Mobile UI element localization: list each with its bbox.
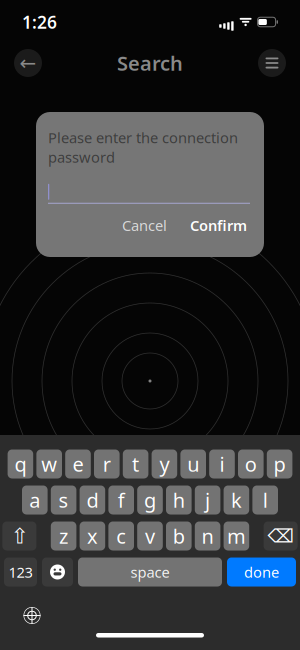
button[interactable]: g <box>137 485 163 514</box>
staticText: 1:26 <box>22 10 57 33</box>
button[interactable]: f <box>108 485 134 514</box>
staticText: s <box>59 487 69 513</box>
button[interactable]: Delete <box>264 521 298 550</box>
staticText: e <box>72 451 83 477</box>
staticText: n <box>202 523 214 549</box>
button[interactable]: b <box>166 521 192 550</box>
staticText: c <box>116 523 126 549</box>
staticText: k <box>231 487 242 513</box>
staticText: t <box>132 451 139 477</box>
button[interactable]: k <box>224 485 249 514</box>
staticText: g <box>144 487 156 513</box>
button[interactable]: x <box>80 521 105 550</box>
staticText: Cancel <box>122 216 167 235</box>
button[interactable]: u <box>180 449 206 478</box>
button[interactable]: q <box>8 449 33 478</box>
staticText: ⌫ <box>268 525 294 547</box>
staticText: d <box>86 487 98 513</box>
button[interactable]: a <box>22 485 48 514</box>
staticText: Confirm <box>190 216 247 235</box>
button[interactable]: Menu <box>258 49 286 77</box>
staticText: space <box>130 562 169 582</box>
staticText: w <box>41 451 57 477</box>
staticText: Please enter the connection password <box>48 128 238 167</box>
button[interactable]: h <box>166 485 192 514</box>
button[interactable]: space <box>78 557 222 586</box>
button[interactable]: done <box>227 557 296 586</box>
staticText: 123 <box>8 562 32 582</box>
staticText: done <box>244 562 279 582</box>
staticText: x <box>87 523 98 549</box>
button[interactable]: o <box>238 449 264 478</box>
button[interactable]: v <box>137 521 163 550</box>
button[interactable]: m <box>224 521 249 550</box>
button[interactable]: y <box>152 449 177 478</box>
staticText: l <box>263 487 268 513</box>
staticText: y <box>159 451 169 477</box>
staticText: b <box>173 523 185 549</box>
button[interactable]: p <box>267 449 292 478</box>
button[interactable]: Shift <box>2 521 36 550</box>
button[interactable]: Back <box>14 49 42 77</box>
staticText: a <box>29 487 40 513</box>
staticText: Search <box>117 50 183 76</box>
staticText: u <box>187 451 199 477</box>
staticText: r <box>103 451 111 477</box>
button[interactable]: l <box>252 485 278 514</box>
button[interactable]: s <box>51 485 76 514</box>
button[interactable]: j <box>195 485 220 514</box>
staticText: z <box>59 523 68 549</box>
staticText: ⇧ <box>10 524 28 548</box>
button[interactable]: z <box>51 521 76 550</box>
button[interactable]: Change keyboard <box>17 600 47 630</box>
button[interactable]: 123 <box>4 557 37 586</box>
button[interactable]: Emoji <box>42 557 73 586</box>
staticText: h <box>173 487 185 513</box>
button[interactable]: d <box>80 485 105 514</box>
staticText: q <box>14 451 26 477</box>
staticText: j <box>205 487 210 513</box>
button[interactable]: i <box>209 449 235 478</box>
button[interactable]: c <box>108 521 134 550</box>
staticText: o <box>245 451 257 477</box>
staticText: i <box>219 451 224 477</box>
button[interactable]: r <box>94 449 120 478</box>
staticText: ← <box>19 52 36 74</box>
button[interactable]: e <box>65 449 91 478</box>
button[interactable]: Cancel <box>117 212 172 239</box>
staticText: p <box>274 451 286 477</box>
button[interactable]: n <box>195 521 220 550</box>
staticText: f <box>118 487 125 513</box>
button[interactable]: Confirm <box>185 212 252 239</box>
button[interactable]: w <box>36 449 62 478</box>
staticText: v <box>145 523 155 549</box>
button[interactable]: t <box>123 449 148 478</box>
staticText: m <box>227 523 246 549</box>
